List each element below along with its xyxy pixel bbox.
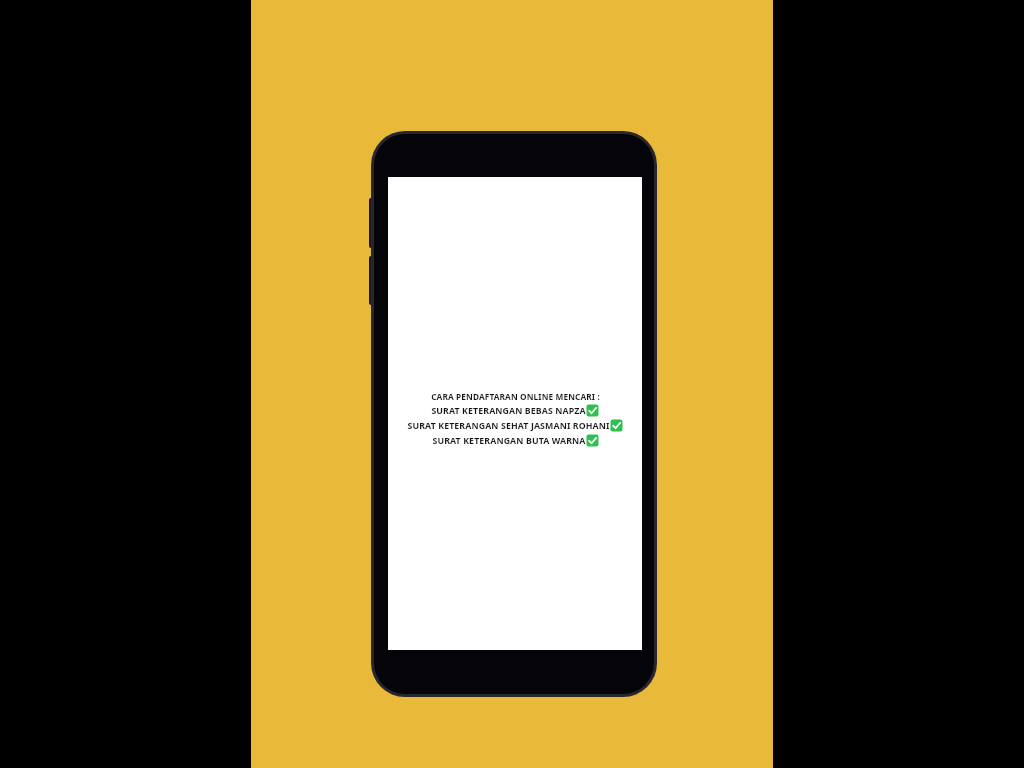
staticText: SURAT KETERANGAN SEHAT JASMANI ROHANI xyxy=(407,420,610,432)
button[interactable]: Power xyxy=(369,256,376,305)
button[interactable]: Volume up xyxy=(369,198,376,248)
staticText: CARA PENDAFTARAN ONLINE MENCARI : xyxy=(431,391,600,402)
staticText: SURAT KETERANGAN BEBAS NAPZA xyxy=(431,405,586,417)
staticText: SURAT KETERANGAN BUTA WARNA xyxy=(432,435,586,447)
